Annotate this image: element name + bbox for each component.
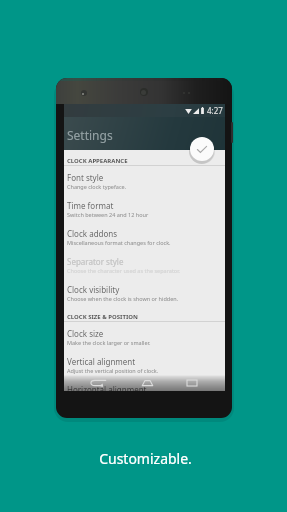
button[interactable]: Clock addons — [64, 222, 225, 250]
staticText: Vertical alignment — [67, 356, 136, 367]
staticText: 4:27 — [207, 105, 223, 116]
staticText: Font style — [67, 172, 104, 183]
staticText: Customizable. — [4, 449, 287, 468]
staticText: Choose the character used as the separat… — [67, 267, 181, 274]
button[interactable]: Home — [138, 378, 156, 388]
button[interactable]: Time format — [64, 194, 225, 222]
staticText: Time format — [67, 200, 114, 211]
staticText: Change clock typeface. — [67, 183, 127, 190]
button[interactable]: Clock size — [64, 322, 225, 350]
button[interactable]: Separator style — [64, 250, 225, 278]
staticText: CLOCK APPEARANCE — [67, 157, 128, 165]
staticText: Clock size — [67, 328, 104, 339]
staticText: Make the clock larger or smaller. — [67, 339, 151, 346]
button[interactable]: Clock visibility — [64, 278, 225, 306]
staticText: Adjust the vertical position of clock. — [67, 367, 159, 374]
staticText: Settings — [67, 127, 113, 143]
staticText: Clock visibility — [67, 284, 120, 295]
button[interactable]: Back — [89, 378, 107, 388]
staticText: Miscellaneous format changes for clock. — [67, 239, 171, 246]
button[interactable]: Font style — [64, 166, 225, 194]
button[interactable]: Horizontal alignment — [64, 378, 225, 391]
staticText: Switch between 24 and 12 hour — [67, 211, 149, 218]
staticText: Choose when the clock is shown or hidden… — [67, 295, 179, 302]
staticText: Horizontal alignment — [67, 384, 147, 391]
staticText: CLOCK SIZE & POSITION — [67, 313, 138, 321]
button[interactable]: Vertical alignment — [64, 350, 225, 378]
button[interactable]: Confirm — [190, 137, 214, 161]
staticText: Separator style — [67, 256, 124, 267]
staticText: Clock addons — [67, 228, 118, 239]
button[interactable]: Recents — [183, 378, 201, 388]
